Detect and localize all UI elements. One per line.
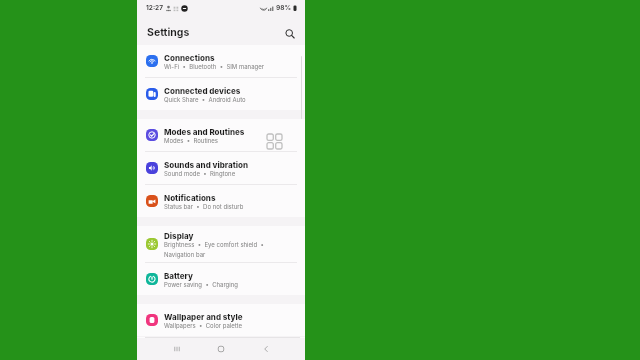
staticText: Display [164, 231, 194, 241]
button[interactable]: Search [282, 26, 298, 42]
staticText: Sound mode • Ringtone [164, 170, 236, 177]
staticText: Connected devices [164, 86, 241, 96]
button[interactable]: Sounds and vibration [137, 152, 305, 184]
button[interactable]: Connections [137, 45, 305, 77]
button[interactable]: Connected devices [137, 78, 305, 110]
staticText: Connections [164, 53, 215, 63]
button[interactable]: Display [137, 226, 305, 262]
staticText: Quick Share • Android Auto [164, 96, 246, 103]
button[interactable]: Wallpaper and style [137, 304, 305, 336]
staticText: Battery [164, 271, 193, 281]
staticText: Wallpaper and style [164, 312, 243, 322]
staticText: Wi-Fi • Bluetooth • SIM manager [164, 63, 264, 70]
staticText: Power saving • Charging [164, 281, 238, 288]
staticText: Brightness • Eye comfort shield • Naviga… [164, 241, 264, 258]
staticText: 98% [276, 4, 292, 12]
staticText: Sounds and vibration [164, 160, 249, 170]
button[interactable]: Home [214, 342, 228, 356]
staticText: Status bar • Do not disturb [164, 203, 244, 210]
button[interactable]: Battery [137, 263, 305, 295]
staticText: Modes • Routines [164, 137, 219, 144]
button[interactable]: Modes and Routines [137, 119, 305, 151]
button[interactable]: Recent apps [170, 342, 184, 356]
staticText: Wallpapers • Color palette [164, 322, 242, 329]
staticText: Modes and Routines [164, 127, 245, 137]
button[interactable]: Notifications [137, 185, 305, 217]
staticText: Settings [147, 26, 190, 39]
staticText: 12:27 [146, 4, 163, 12]
staticText: Notifications [164, 193, 216, 203]
button[interactable]: Back [259, 342, 273, 356]
